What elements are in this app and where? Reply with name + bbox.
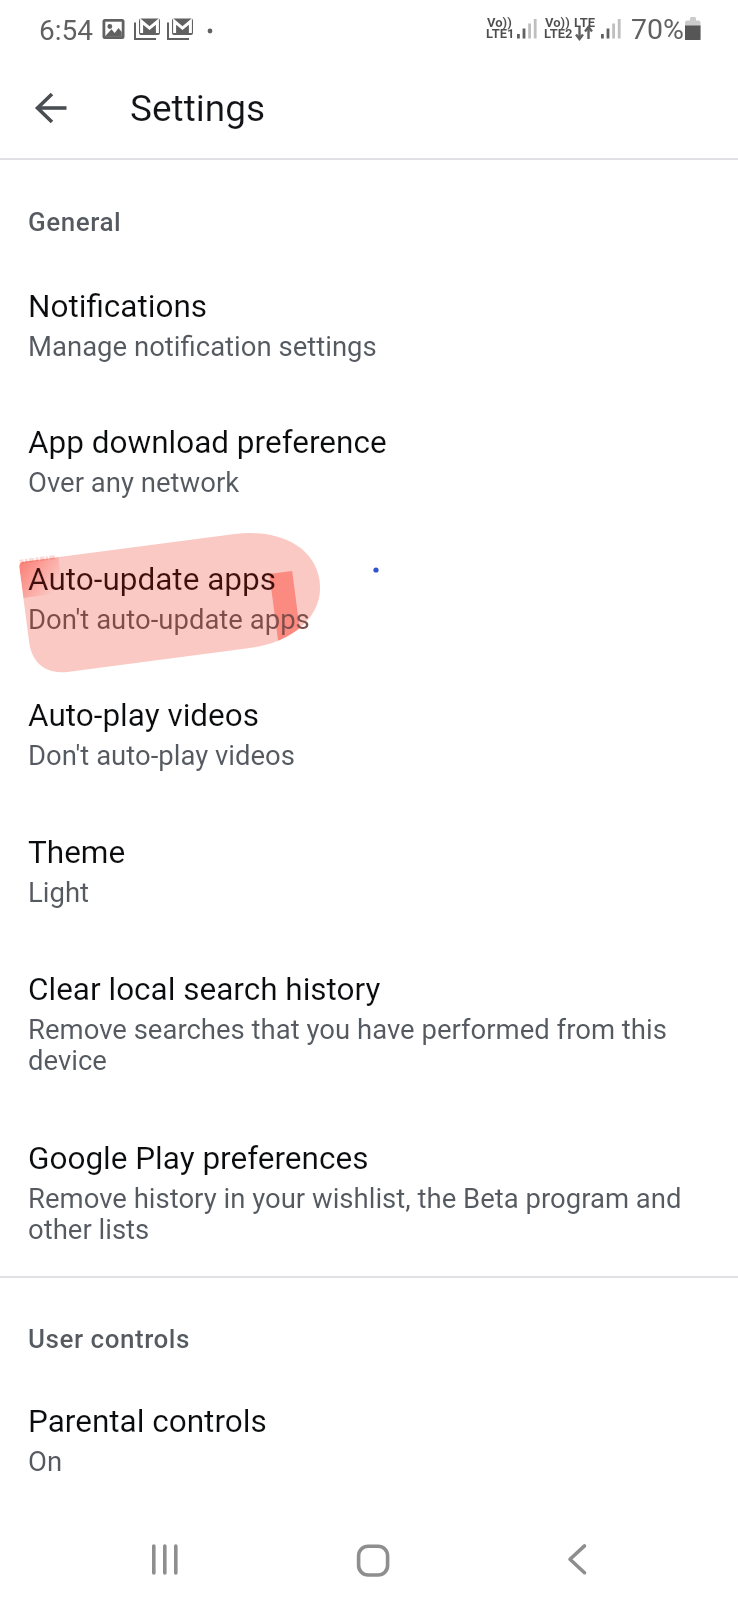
button[interactable]: Home [324, 1512, 420, 1600]
staticText: On [28, 1445, 63, 1477]
staticText: LTE1 [486, 26, 515, 41]
button[interactable]: Auto-play videos [0, 674, 738, 772]
staticText: Remove searches that you have performed … [28, 1013, 667, 1045]
staticText: App download preference [28, 424, 387, 461]
button[interactable]: Google Play preferences [0, 1117, 738, 1246]
staticText: Remove history in your wishlist, the Bet… [28, 1182, 682, 1214]
staticText: 70% [631, 13, 684, 46]
staticText: LTE [574, 15, 596, 30]
staticText: Vo)) [487, 15, 512, 30]
staticText: Don't auto-play videos [28, 739, 295, 771]
staticText: Auto-play videos [28, 697, 259, 734]
staticText: other lists [28, 1213, 150, 1245]
button[interactable]: Parental controls [0, 1380, 738, 1478]
staticText: General [28, 207, 122, 237]
staticText: Google Play preferences [28, 1140, 369, 1177]
staticText: 6:54 [39, 14, 93, 47]
button[interactable]: Clear local search history [0, 948, 738, 1077]
staticText: Settings [130, 87, 266, 130]
staticText: Manage notification settings [28, 330, 377, 362]
staticText: LTE2 [544, 26, 573, 41]
button[interactable]: Recent apps [117, 1512, 213, 1600]
button[interactable]: Back [16, 66, 88, 138]
button[interactable]: App download preference [0, 401, 738, 499]
staticText: device [28, 1044, 107, 1076]
button[interactable]: Notifications [0, 265, 738, 363]
staticText: Auto-update apps [28, 561, 276, 598]
staticText: Parental controls [28, 1403, 267, 1440]
button[interactable]: Theme [0, 811, 738, 909]
button[interactable]: Auto-update apps [0, 538, 738, 636]
staticText: Over any network [28, 466, 240, 498]
staticText: Theme [28, 834, 126, 871]
staticText: Vo)) [545, 15, 570, 30]
staticText: Don't auto-update apps [28, 603, 310, 635]
staticText: Clear local search history [28, 971, 381, 1008]
staticText: Light [28, 876, 90, 908]
staticText: Notifications [28, 288, 208, 325]
button[interactable]: Back [530, 1512, 626, 1600]
staticText: User controls [28, 1324, 190, 1354]
